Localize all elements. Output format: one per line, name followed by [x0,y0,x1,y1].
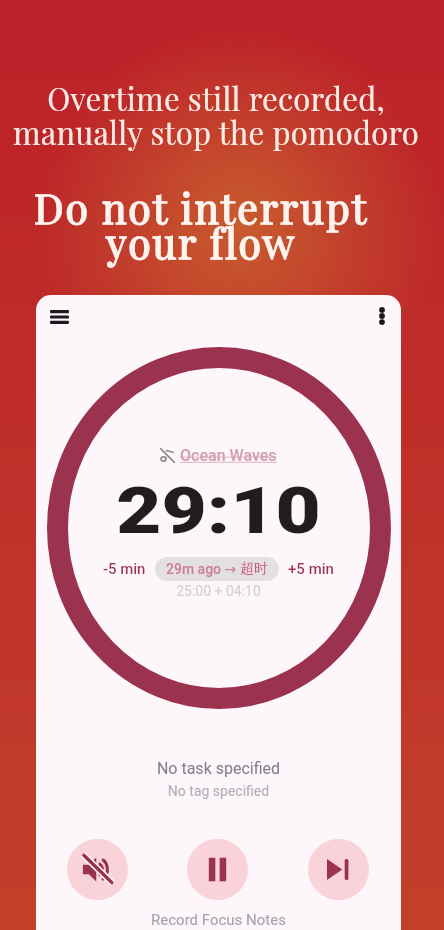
staticText: 25:00 + 04:10 [36,583,401,599]
staticText: Overtime still recorded, manually stop t… [0,77,438,153]
staticText: 超时 [240,560,268,578]
button[interactable]: -5 min [98,557,151,581]
button[interactable]: Menu [41,299,77,335]
button[interactable]: Pause [187,839,248,900]
staticText: Ocean Waves [180,446,277,465]
staticText: Do not interrupt your flow [0,180,423,269]
staticText: Record Focus Notes [36,911,401,929]
button[interactable]: 29m ago → [155,557,279,581]
staticText: No task specified [36,759,401,778]
button[interactable]: More options [364,298,400,334]
staticText: 29:10 [36,473,401,549]
button[interactable]: Skip next [308,839,369,900]
staticText: +5 min [288,560,334,578]
button[interactable]: Mute [67,839,128,900]
button[interactable]: +5 min [283,557,339,581]
staticText: -5 min [103,560,146,578]
staticText: 29m ago → [166,561,240,577]
staticText: No tag specified [36,783,401,799]
